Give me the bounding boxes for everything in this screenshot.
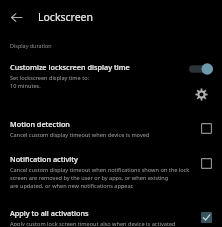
- button[interactable]: Apply to all activations: [0, 207, 222, 227]
- button[interactable]: Notification activity: [0, 153, 222, 191]
- staticText: Apply to all activations: [10, 208, 89, 218]
- button[interactable]: Motion detection checkbox: [198, 120, 214, 136]
- staticText: Apply custom lock screen timeout also wh…: [10, 220, 194, 226]
- button[interactable]: Motion detection: [0, 118, 222, 140]
- staticText: are updated, or when new notifications a…: [10, 182, 134, 190]
- button[interactable]: Notification activity checkbox: [198, 155, 214, 171]
- staticText: Customize lockscreen display time: [10, 62, 130, 72]
- staticText: Motion detection: [10, 119, 70, 129]
- staticText: 10 minutes.: [10, 82, 41, 90]
- staticText: Display duration: [10, 42, 52, 49]
- staticText: Cancel custom display timeout when notif…: [10, 166, 190, 174]
- staticText: Cancel custom display timeout when devic…: [10, 131, 150, 139]
- staticText: Set lockscreen display time to:: [10, 74, 90, 82]
- button[interactable]: Settings: [192, 85, 210, 103]
- button[interactable]: Back: [5, 6, 27, 28]
- staticText: Lockscreen: [38, 10, 94, 24]
- button[interactable]: Apply to all activations checkbox: [198, 209, 214, 225]
- staticText: Notification activity: [10, 154, 78, 164]
- staticText: screen are removed by the user or by app…: [10, 174, 194, 182]
- button[interactable]: Customize lockscreen display time toggle: [188, 62, 214, 76]
- button[interactable]: Customize lockscreen display time: [0, 60, 222, 105]
